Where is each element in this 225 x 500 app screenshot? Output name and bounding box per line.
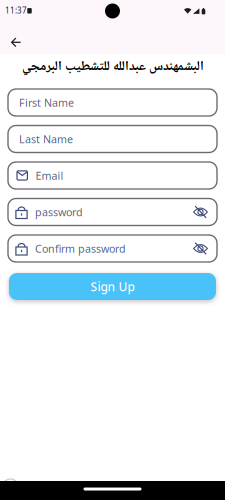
staticText: 11:37	[5, 5, 27, 16]
staticText: Sign Up	[90, 278, 134, 294]
button[interactable]: Confirm password	[8, 235, 217, 262]
staticText: البشمهندس عبدالله للتشطيب البرمجي	[21, 56, 203, 78]
staticText: First Name	[19, 95, 74, 110]
button[interactable]: First Name	[8, 89, 217, 116]
staticText: Confirm password	[35, 241, 126, 256]
button[interactable]: Show password	[193, 206, 217, 218]
button[interactable]: Email	[8, 162, 217, 189]
staticText: password	[35, 205, 83, 219]
button[interactable]: Sign Up	[9, 273, 216, 300]
staticText: Last Name	[19, 132, 73, 146]
staticText: Email	[35, 168, 63, 183]
button[interactable]: password	[8, 198, 217, 225]
button[interactable]: Back	[4, 30, 28, 54]
button[interactable]: Show password	[193, 242, 217, 254]
button[interactable]: Last Name	[8, 125, 217, 152]
